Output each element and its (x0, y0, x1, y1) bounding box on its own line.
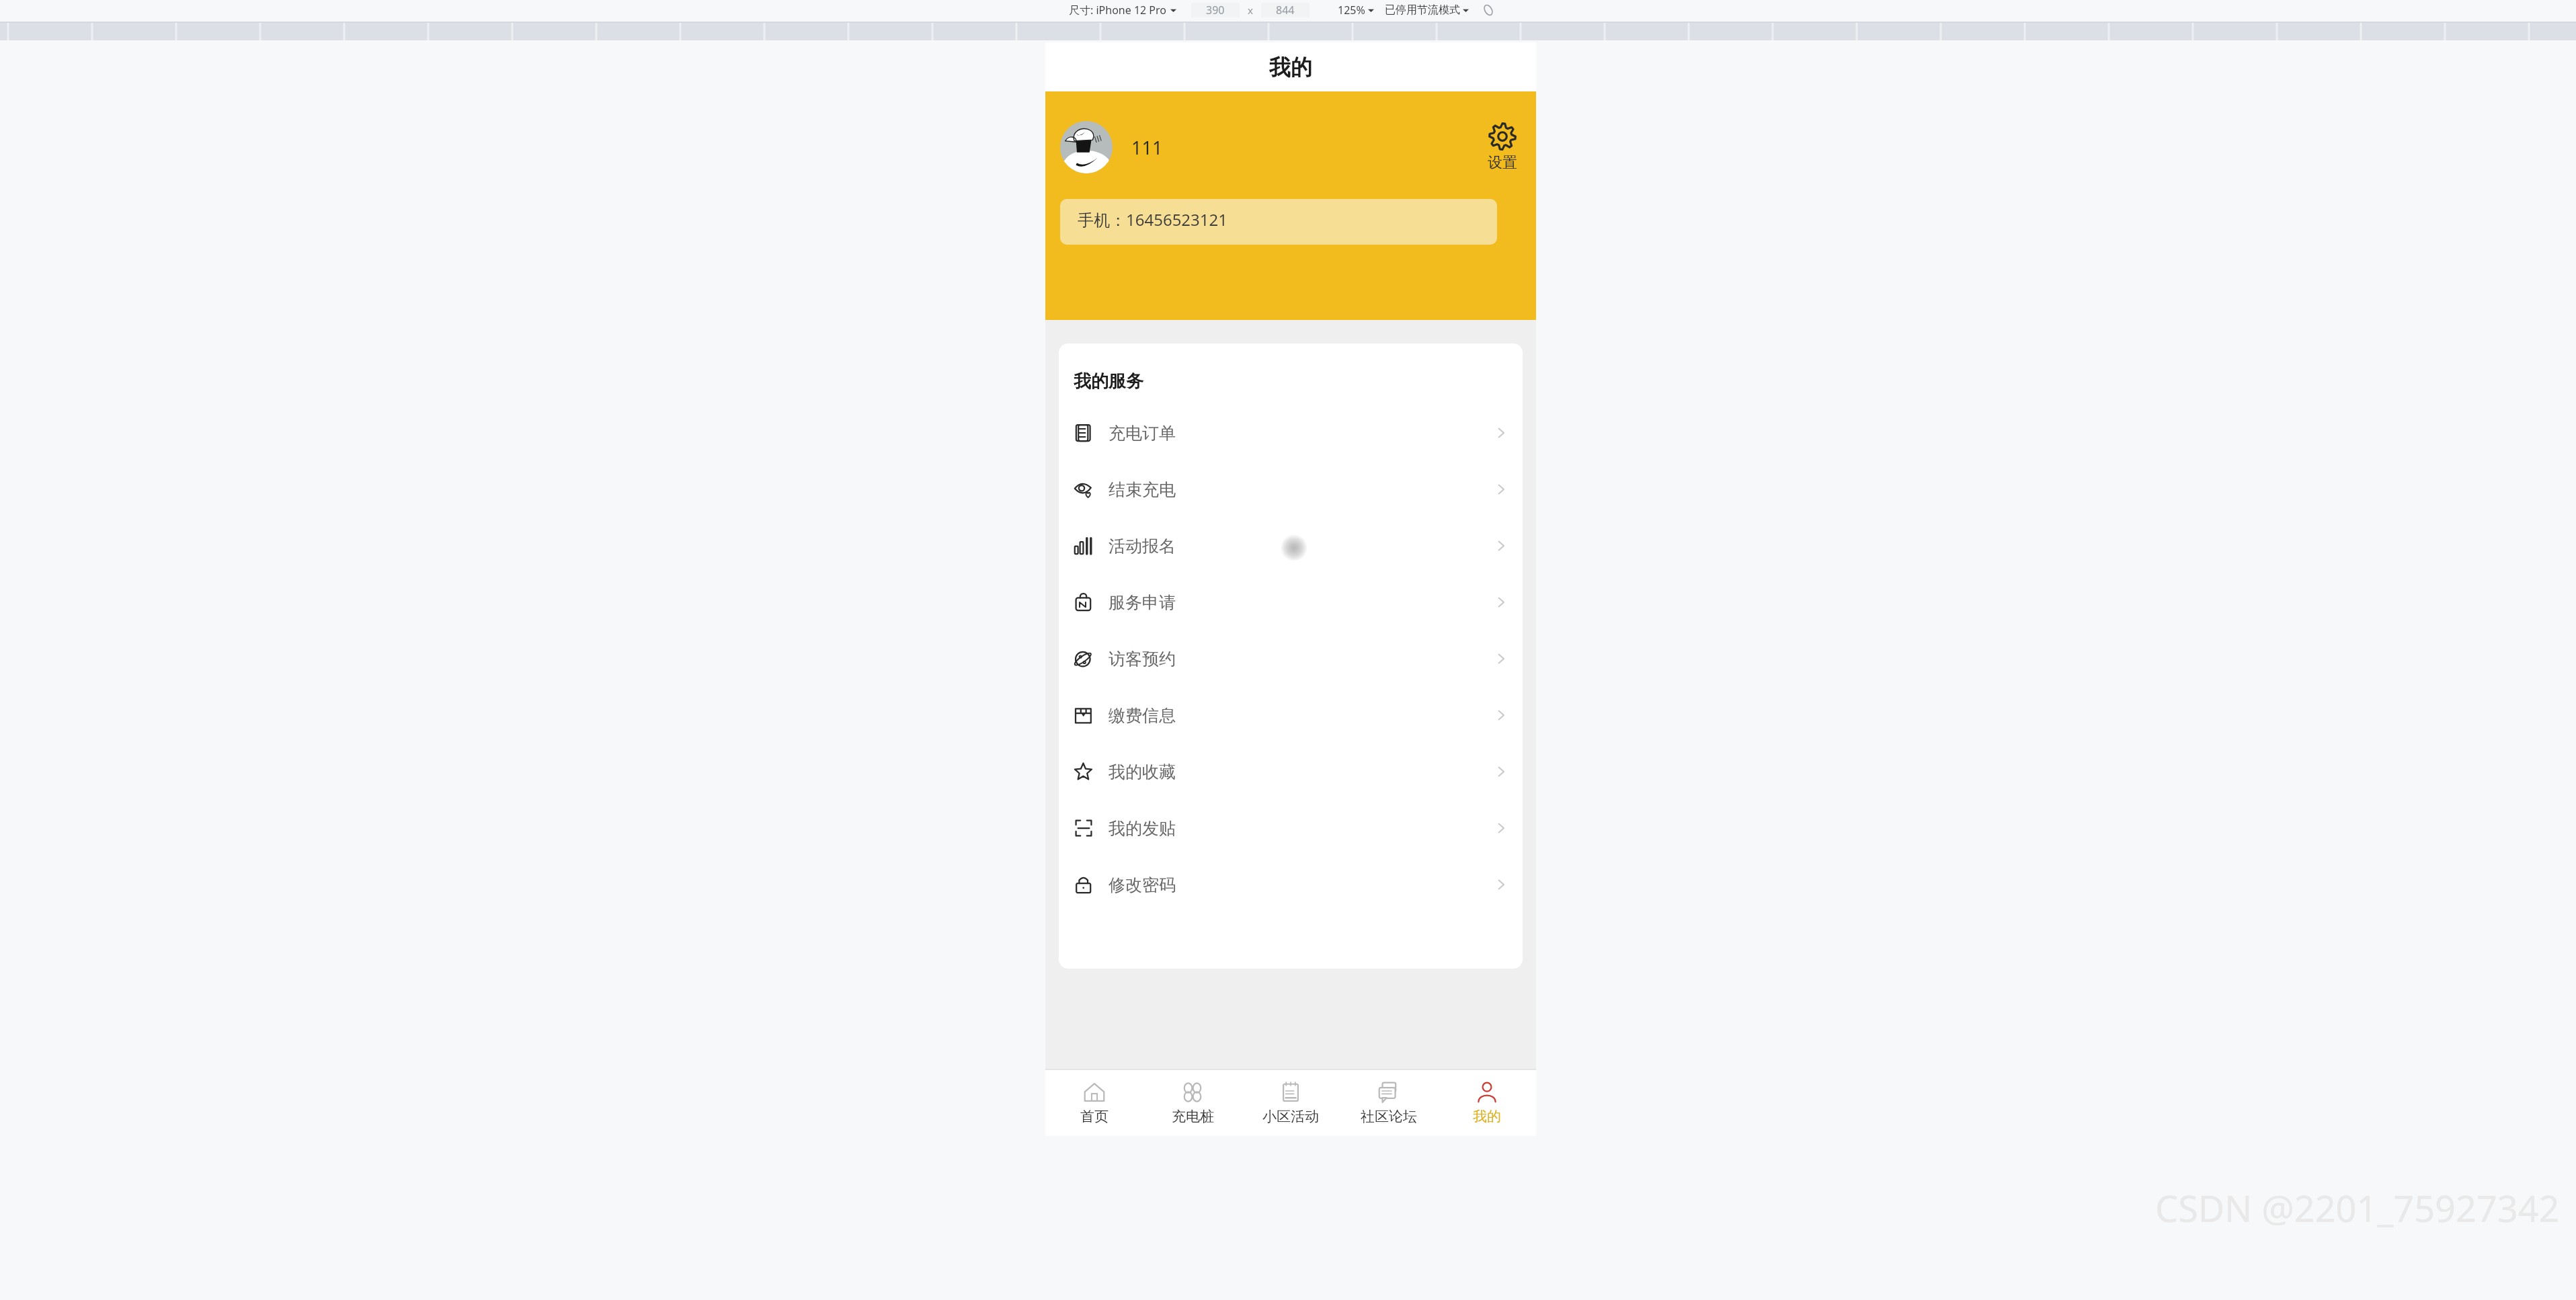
button[interactable]: 充电桩 (1143, 1070, 1242, 1136)
staticText: 我的 (1473, 1108, 1501, 1125)
staticText: 我的收藏 (1109, 762, 1176, 782)
button[interactable]: 小区活动 (1242, 1070, 1340, 1136)
staticText: 844 (1276, 3, 1295, 17)
staticText: 小区活动 (1262, 1108, 1319, 1125)
button[interactable]: 我的 (1438, 1070, 1536, 1136)
staticText: 390 (1206, 3, 1225, 17)
button[interactable]: 首页 (1045, 1070, 1143, 1136)
staticText: 充电订单 (1109, 423, 1176, 444)
staticText: 设置 (1488, 153, 1517, 172)
button[interactable]: 结束充电 (1059, 461, 1523, 518)
staticText: 服务申请 (1109, 592, 1176, 613)
staticText: 111 (1131, 135, 1163, 160)
staticText: 结束充电 (1109, 479, 1176, 500)
button[interactable]: 充电订单 (1059, 405, 1523, 461)
staticText: CSDN @2201_75927342 (2155, 1183, 2560, 1233)
staticText: x (1248, 3, 1253, 17)
staticText: 手机：16456523121 (1078, 208, 1228, 231)
staticText: 尺寸: iPhone 12 Pro (1069, 3, 1167, 17)
button[interactable]: 缴费信息 (1059, 687, 1523, 743)
staticText: 已停用节流模式 (1385, 3, 1460, 17)
button[interactable]: 修改密码 (1059, 856, 1523, 913)
staticText: 社区论坛 (1361, 1108, 1417, 1125)
staticText: 修改密码 (1109, 875, 1176, 895)
button[interactable]: 我的收藏 (1059, 743, 1523, 800)
button[interactable]: 手机：16456523121 (1060, 199, 1497, 245)
staticText: 125% (1338, 3, 1365, 17)
button[interactable]: 活动报名 (1059, 518, 1523, 574)
staticText: 我的发贴 (1109, 818, 1176, 839)
button[interactable]: 设置 (1484, 121, 1521, 173)
staticText: 我的 (1269, 54, 1312, 81)
staticText: 充电桩 (1172, 1108, 1214, 1125)
staticText: 活动报名 (1109, 536, 1176, 557)
staticText: 首页 (1080, 1108, 1109, 1125)
button[interactable]: 访客预约 (1059, 631, 1523, 687)
staticText: 访客预约 (1109, 649, 1176, 669)
staticText: 我的服务 (1074, 370, 1143, 393)
button[interactable]: 社区论坛 (1340, 1070, 1438, 1136)
staticText: 缴费信息 (1109, 705, 1176, 726)
button[interactable]: 我的发贴 (1059, 800, 1523, 856)
button[interactable]: 服务申请 (1059, 574, 1523, 631)
